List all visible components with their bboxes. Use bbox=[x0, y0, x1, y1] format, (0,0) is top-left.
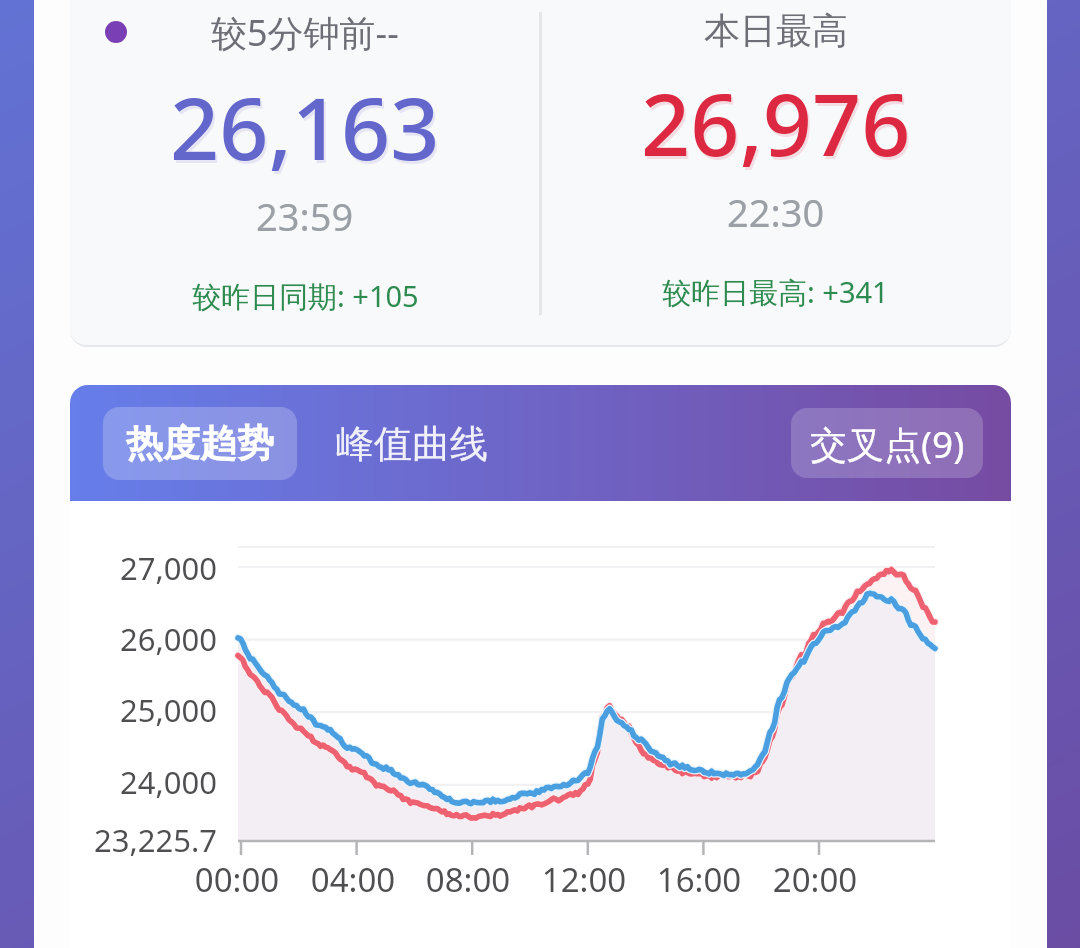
staticText: 16:00 bbox=[641, 857, 757, 902]
staticText: 26,163 bbox=[172, 71, 442, 188]
staticText: 较5分钟前-- bbox=[211, 8, 399, 57]
staticText: 26,976 bbox=[641, 64, 911, 181]
button[interactable]: 热度趋势 bbox=[70, 385, 1011, 948]
staticText: 本日最高 bbox=[704, 8, 848, 53]
staticText: 26,163 bbox=[170, 68, 440, 185]
button[interactable]: Live indicator bbox=[103, 19, 129, 45]
staticText: 22:30 bbox=[727, 186, 825, 238]
button[interactable]: Live indicator bbox=[70, 0, 1011, 345]
staticText: 热度趋势 bbox=[126, 420, 274, 467]
staticText: 峰值曲线 bbox=[336, 420, 488, 468]
staticText: 较昨日最高: +341 bbox=[662, 272, 889, 312]
staticText: 20:00 bbox=[757, 857, 873, 902]
staticText: 25,000 bbox=[70, 689, 217, 731]
staticText: 24,000 bbox=[70, 761, 217, 803]
staticText: 23,225.7 bbox=[70, 819, 217, 861]
staticText: 08:00 bbox=[410, 857, 526, 902]
staticText: 较昨日同期: +105 bbox=[192, 276, 419, 316]
staticText: 交叉点(9) bbox=[810, 418, 965, 469]
staticText: 23:59 bbox=[256, 190, 354, 242]
button[interactable]: 峰值曲线 bbox=[336, 407, 488, 480]
button[interactable]: 交叉点(9) bbox=[791, 408, 983, 478]
staticText: 00:00 bbox=[179, 857, 295, 902]
staticText: 27,000 bbox=[70, 547, 217, 589]
staticText: 26,976 bbox=[643, 67, 913, 184]
staticText: 04:00 bbox=[295, 857, 411, 902]
staticText: 26,000 bbox=[70, 618, 217, 660]
button[interactable]: 热度趋势 bbox=[103, 407, 297, 480]
staticText: 12:00 bbox=[526, 857, 642, 902]
